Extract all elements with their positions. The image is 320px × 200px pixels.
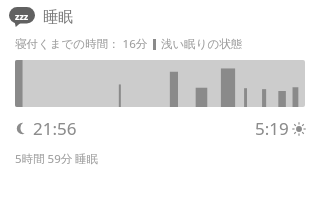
other: Bedtime <box>16 122 29 135</box>
staticText: 寝付くまでの時間： 16分 <box>15 36 148 52</box>
button[interactable]: Sleep <box>9 7 320 27</box>
other: Sleep <box>9 7 35 27</box>
staticText: 5:19 <box>255 117 289 140</box>
other: Wake up <box>292 122 306 136</box>
staticText: 21:56 <box>33 117 77 140</box>
button[interactable] <box>15 60 305 107</box>
staticText: zzz <box>15 10 29 22</box>
staticText: 浅い眠りの状態 <box>161 37 243 51</box>
staticText: 睡眠 <box>43 8 73 27</box>
staticText: 5時間 59分 睡眠 <box>15 151 99 167</box>
